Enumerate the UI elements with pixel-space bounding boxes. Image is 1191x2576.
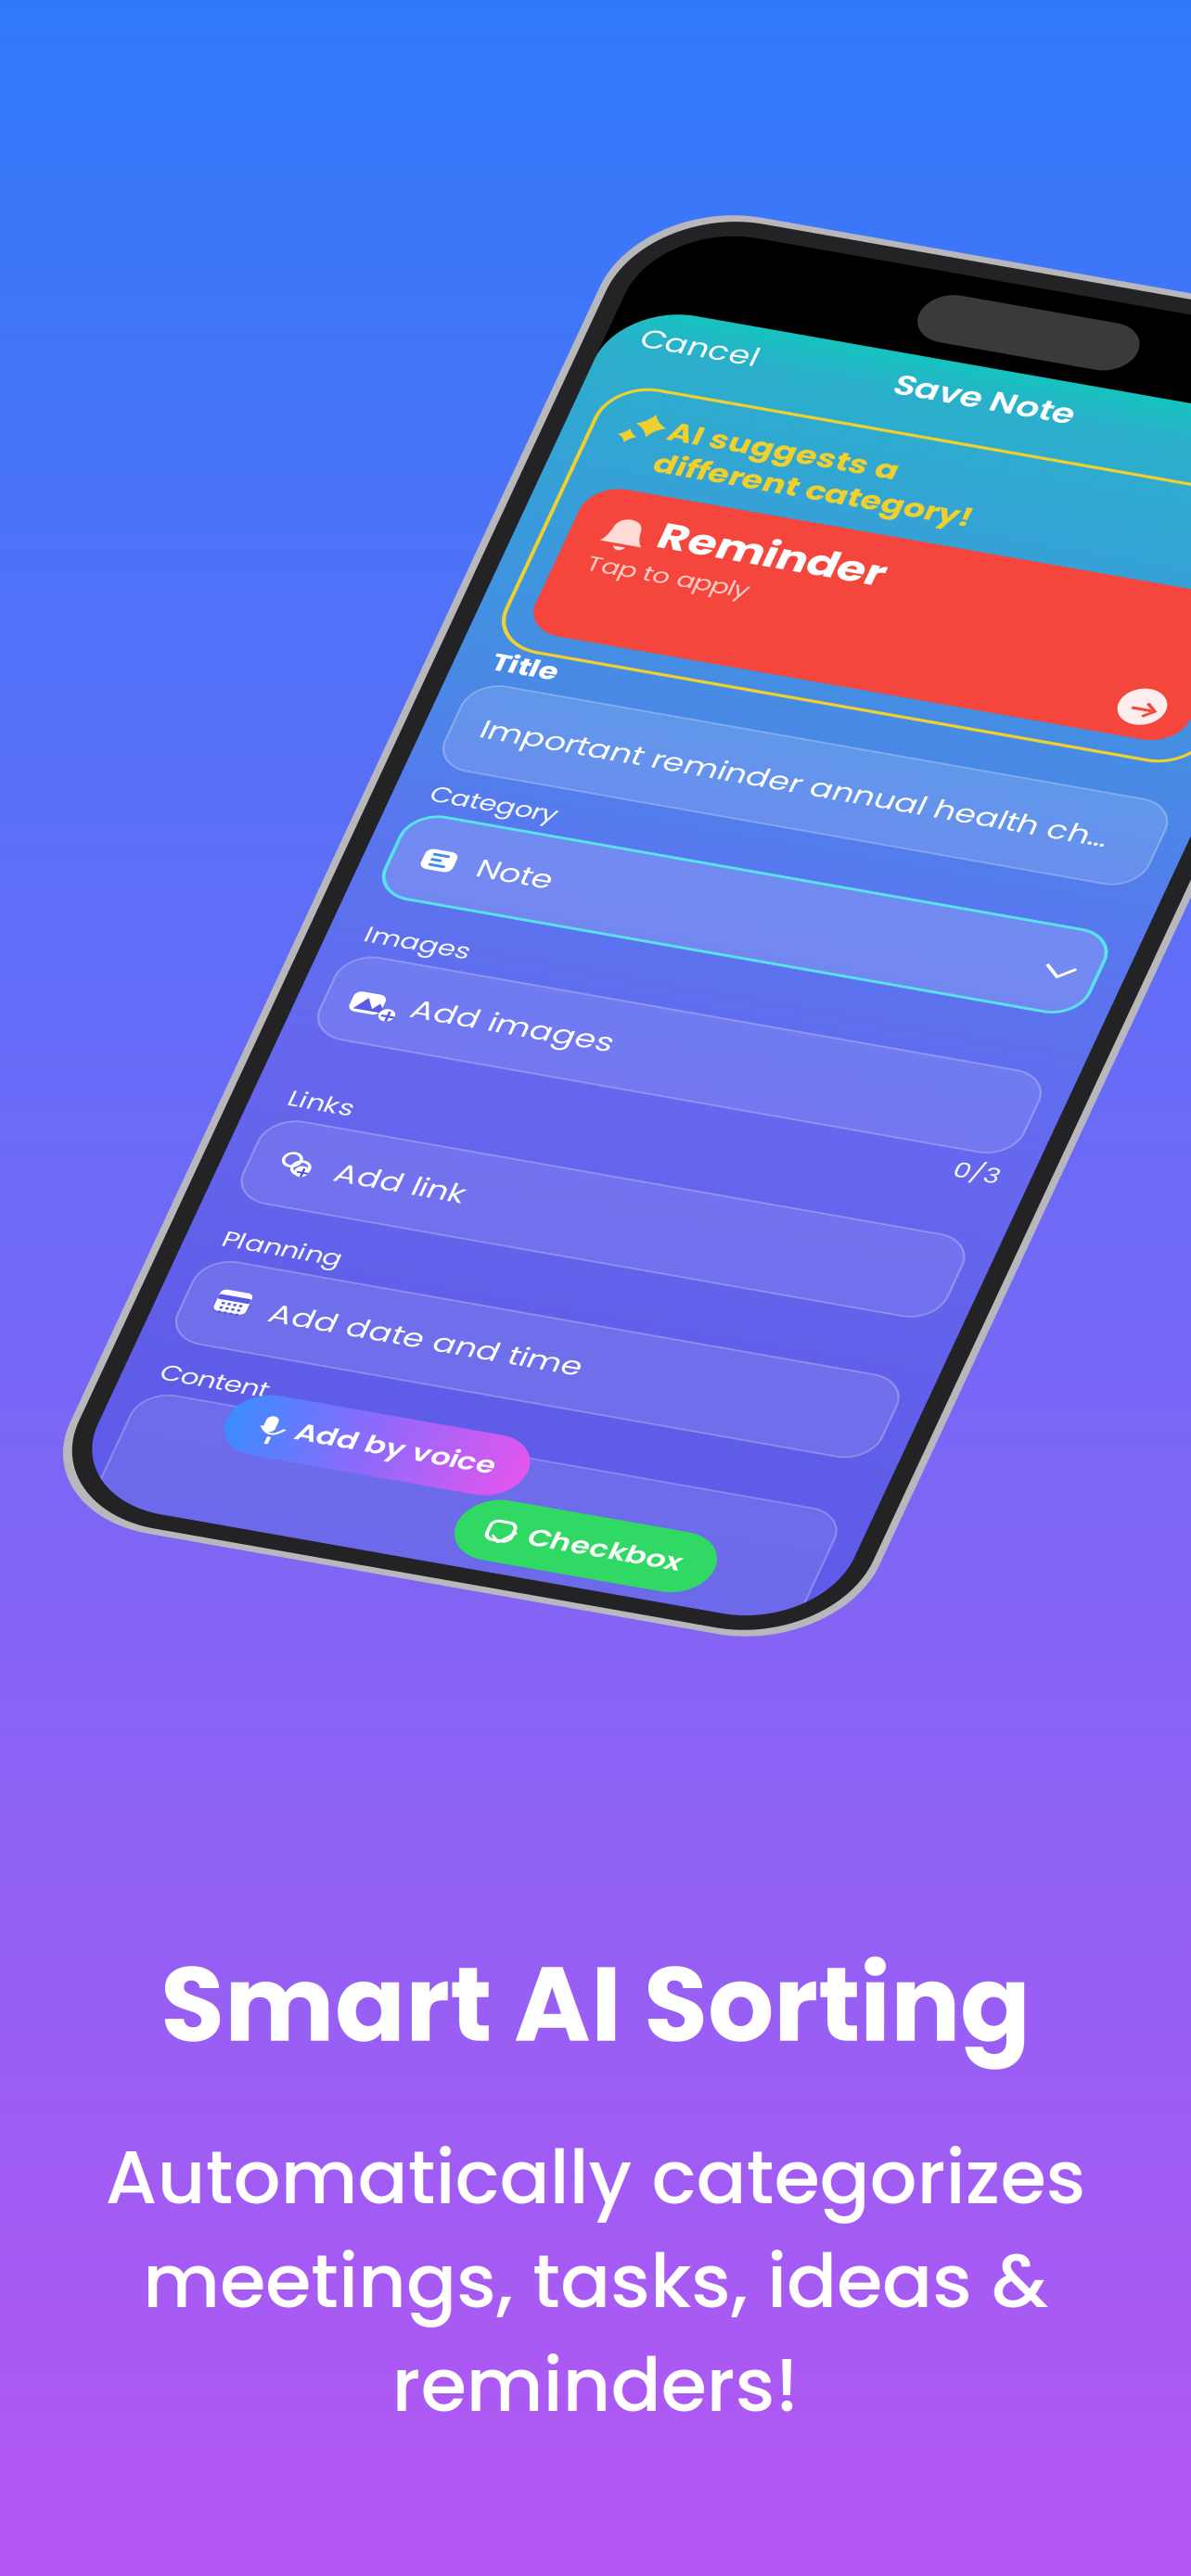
button[interactable]: Add link [668,794,1015,848]
button[interactable]: Add by voice [712,963,861,1002]
staticText: Add by voice [747,972,845,993]
button[interactable]: Reminder [680,376,1003,472]
staticText: Automatically categorizes [105,2125,1086,2229]
button[interactable]: Save [971,271,1011,293]
staticText: Content [672,951,725,970]
staticText: Title [672,484,705,505]
staticText: Tap to apply [695,415,775,434]
staticText: Links [672,772,705,791]
button[interactable]: Add date and time [668,887,1015,940]
button[interactable]: Add images [668,687,1015,740]
staticText: Planning [672,864,731,883]
staticText: Save [971,271,1011,293]
staticText: Add images [710,702,809,725]
staticText: AI suggests a [704,325,817,347]
staticText: Reminder [722,384,833,415]
staticText: Smart AI Sorting [160,1932,1031,2077]
button[interactable]: Important reminder annual health chec... [668,509,1015,564]
staticText: meetings, tasks, ideas & [143,2229,1048,2333]
button[interactable]: Note [668,594,1015,648]
staticText: reminders! [392,2333,799,2437]
staticText: Images [672,664,724,683]
staticText: different category! [704,345,861,368]
staticText: Important reminder annual health chec... [682,525,993,548]
staticText: Add link [710,810,774,833]
staticText: Category [672,572,735,591]
